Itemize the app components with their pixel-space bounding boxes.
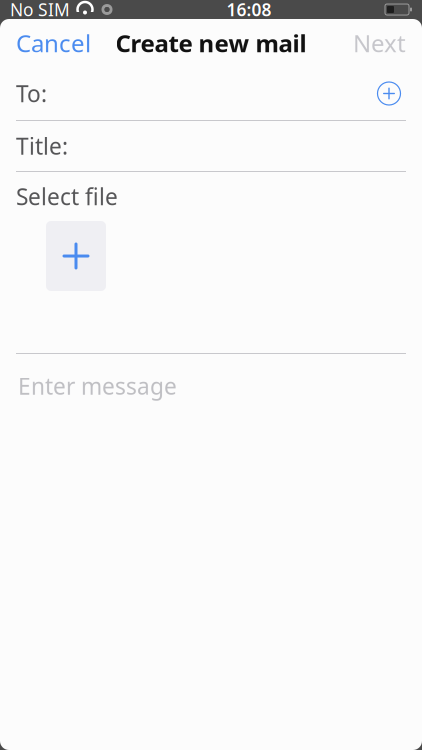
staticText: Cancel <box>16 27 91 59</box>
staticText: Select file <box>16 181 118 211</box>
button[interactable]: Cancel <box>0 19 107 67</box>
button[interactable]: Next <box>337 19 422 67</box>
staticText: Create new mail <box>115 27 306 59</box>
staticText: No SIM <box>10 0 70 21</box>
staticText: Title: <box>16 131 68 161</box>
staticText: 16:08 <box>226 0 271 21</box>
staticText: Enter message <box>18 371 177 401</box>
button[interactable]: Attach file <box>46 221 106 291</box>
staticText: To: <box>16 78 47 108</box>
staticText: Next <box>353 27 406 59</box>
button[interactable]: Add recipient <box>372 76 406 110</box>
